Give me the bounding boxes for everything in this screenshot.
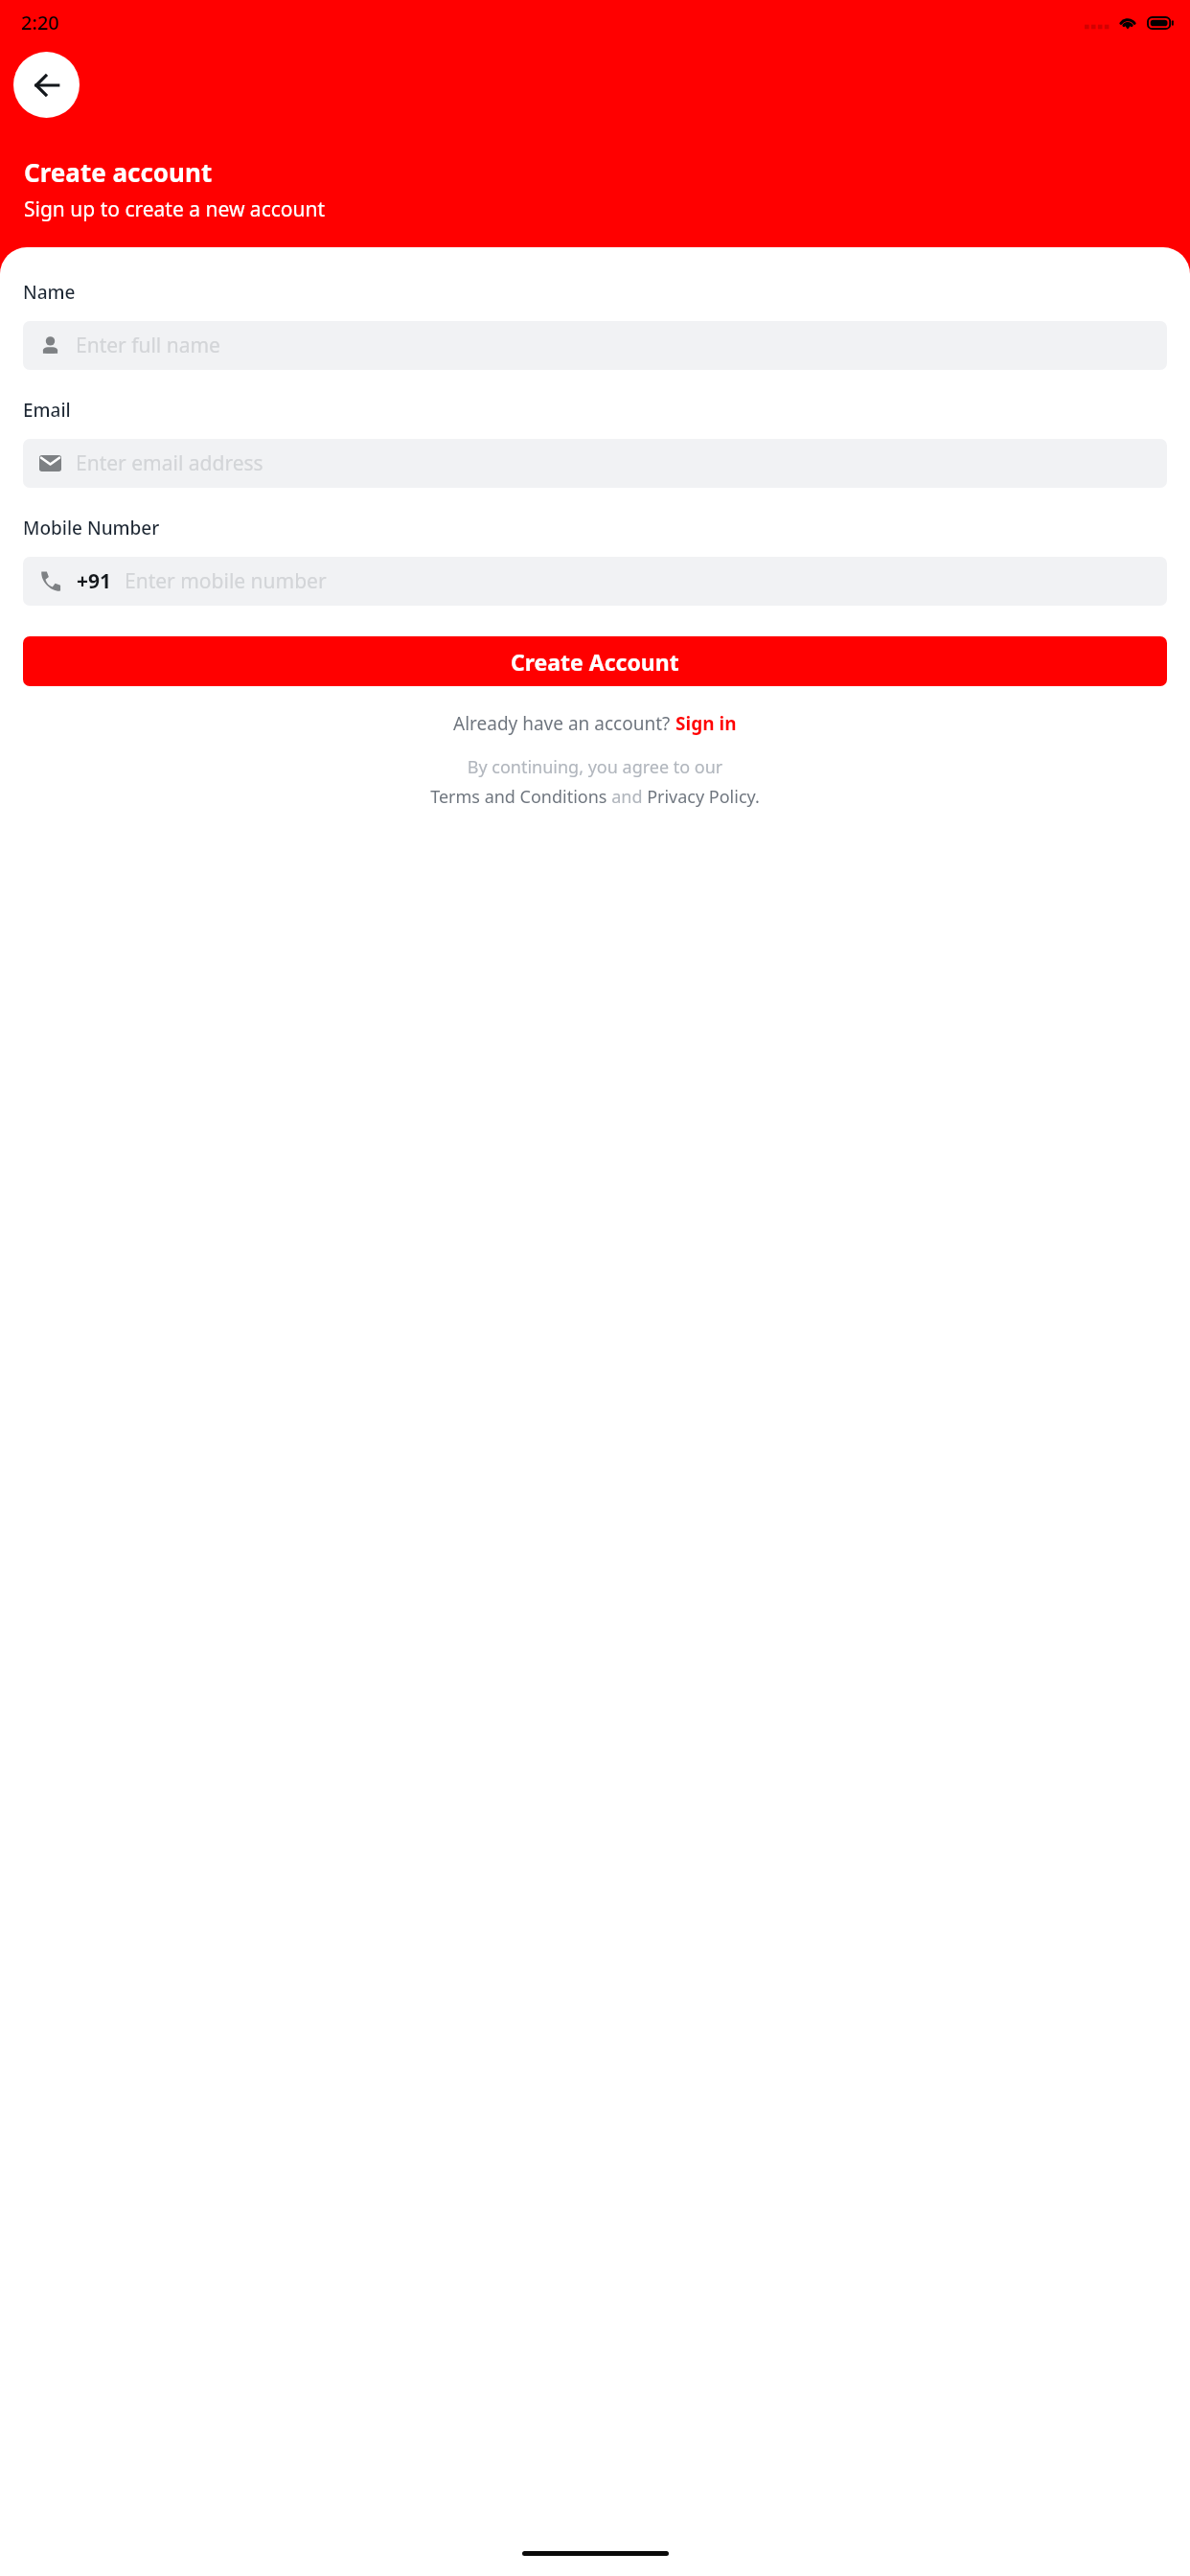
staticText: Name — [23, 280, 76, 305]
staticText: Sign up to create a new account — [24, 195, 326, 223]
staticText: Enter full name — [76, 332, 220, 359]
staticText: By continuing, you agree to our — [23, 755, 1167, 779]
staticText: Create account — [24, 155, 213, 189]
staticText: Already have an account? — [453, 711, 675, 736]
button[interactable]: Terms and Conditions and Privacy Policy. — [23, 785, 1167, 809]
button[interactable]: Create Account — [23, 636, 1167, 686]
button[interactable]: +91 — [23, 557, 1167, 606]
button[interactable]: Already have an account? — [23, 711, 1167, 736]
button[interactable]: Back — [13, 52, 80, 118]
button[interactable]: Enter full name — [23, 321, 1167, 370]
staticText: Email — [23, 398, 71, 423]
staticText: Enter mobile number — [125, 567, 327, 595]
staticText: Mobile Number — [23, 516, 160, 540]
staticText: 2:20 — [21, 10, 59, 35]
button[interactable]: Enter email address — [23, 439, 1167, 488]
staticText: Enter email address — [76, 449, 263, 477]
staticText: +91 — [77, 567, 112, 595]
staticText: Sign in — [675, 711, 737, 736]
staticText: Create Account — [511, 647, 679, 677]
